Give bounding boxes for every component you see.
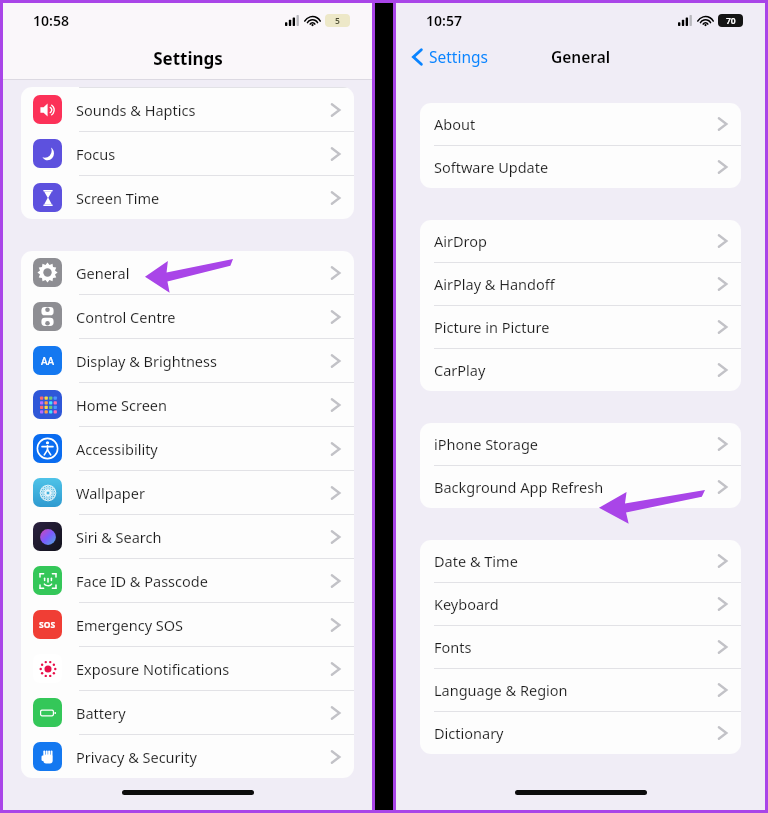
staticText: SOS (39, 619, 56, 631)
staticText: Battery (76, 703, 126, 723)
staticText: Wallpaper (76, 483, 145, 503)
staticText: 10:58 (33, 11, 69, 30)
staticText: Accessibility (76, 439, 158, 459)
staticText: Home Screen (76, 395, 167, 415)
button[interactable]: AirDrop (420, 220, 741, 262)
button[interactable]: Home Screen (21, 383, 354, 426)
button[interactable]: Wallpaper (21, 471, 354, 514)
button[interactable]: Date & Time (420, 540, 741, 582)
button[interactable]: Keyboard (420, 583, 741, 625)
button[interactable]: Accessibility (21, 427, 354, 470)
staticText: Picture in Picture (434, 317, 550, 337)
staticText: 5 (335, 15, 340, 27)
staticText: CarPlay (434, 360, 486, 380)
button[interactable]: Software Update (420, 146, 741, 188)
button[interactable]: Fonts (420, 626, 741, 668)
other: Annotation arrow pointing to Background … (599, 490, 705, 524)
staticText: iPhone Storage (434, 434, 539, 454)
staticText: Fonts (434, 637, 472, 657)
button[interactable]: About (420, 103, 741, 145)
button[interactable]: Privacy & Security (21, 735, 354, 778)
staticText: Sounds & Haptics (76, 100, 196, 120)
staticText: AirPlay & Handoff (434, 274, 555, 294)
button[interactable]: Picture in Picture (420, 306, 741, 348)
button[interactable]: Exposure Notifications (21, 647, 354, 690)
staticText: Display & Brightness (76, 351, 217, 371)
staticText: Settings (429, 46, 488, 67)
staticText: Exposure Notifications (76, 659, 230, 679)
staticText: General (551, 46, 611, 67)
button[interactable]: AirPlay & Handoff (420, 263, 741, 305)
button[interactable]: Face ID & Passcode (21, 559, 354, 602)
button[interactable]: Screen Time (21, 176, 354, 219)
staticText: Privacy & Security (76, 747, 197, 767)
staticText: Date & Time (434, 551, 518, 571)
staticText: 70 (726, 15, 736, 27)
staticText: Dictionary (434, 723, 504, 743)
staticText: Software Update (434, 157, 549, 177)
staticText: Face ID & Passcode (76, 571, 208, 591)
button[interactable]: Siri & Search (21, 515, 354, 558)
button[interactable]: Sounds & Haptics (21, 88, 354, 131)
staticText: AA (41, 354, 55, 368)
button[interactable]: AA (21, 339, 354, 382)
button[interactable]: SOS (21, 603, 354, 646)
button[interactable]: Background App Refresh (420, 466, 741, 508)
staticText: Settings (153, 47, 223, 70)
staticText: Language & Region (434, 680, 568, 700)
staticText: Keyboard (434, 594, 499, 614)
button[interactable]: CarPlay (420, 349, 741, 391)
button[interactable]: Language & Region (420, 669, 741, 711)
staticText: General (76, 263, 130, 283)
staticText: Focus (76, 144, 116, 164)
button[interactable]: Settings (412, 46, 488, 67)
button[interactable]: iPhone Storage (420, 423, 741, 465)
staticText: Background App Refresh (434, 477, 604, 497)
button[interactable]: General (21, 251, 354, 294)
button[interactable]: Control Centre (21, 295, 354, 338)
staticText: Siri & Search (76, 527, 162, 547)
staticText: 10:57 (426, 11, 462, 30)
staticText: Emergency SOS (76, 615, 184, 635)
staticText: AirDrop (434, 231, 487, 251)
other: Annotation arrow pointing to General (145, 259, 233, 293)
staticText: About (434, 114, 476, 134)
button[interactable]: Focus (21, 132, 354, 175)
staticText: Screen Time (76, 188, 160, 208)
staticText: Control Centre (76, 307, 176, 327)
button[interactable]: Dictionary (420, 712, 741, 754)
button[interactable]: Battery (21, 691, 354, 734)
